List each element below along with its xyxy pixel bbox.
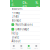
staticText: Storage xyxy=(12,19,22,22)
staticText: Calls xyxy=(20,47,23,49)
button[interactable]: Data Usage xyxy=(10,27,40,32)
button[interactable]: Calls xyxy=(17,44,25,50)
button[interactable]: More xyxy=(32,44,40,50)
button[interactable]: Help xyxy=(10,32,40,36)
button[interactable]: Storage xyxy=(10,19,40,22)
button[interactable]: Chats xyxy=(10,15,40,19)
staticText: Help xyxy=(12,32,19,35)
button[interactable]: Notifications xyxy=(10,22,40,27)
staticText: Invite xyxy=(12,36,20,39)
button[interactable]: Edit xyxy=(11,0,14,10)
staticText: About xyxy=(12,39,21,43)
button[interactable]: Privacy xyxy=(10,11,40,15)
button[interactable]: About xyxy=(10,39,40,43)
staticText: Chats xyxy=(12,15,19,18)
staticText: Notifications xyxy=(15,23,32,26)
button[interactable]: New xyxy=(36,1,39,8)
staticText: Chats xyxy=(22,1,27,8)
staticText: Status xyxy=(12,47,16,49)
staticText: Edit xyxy=(11,0,14,10)
staticText: Privacy xyxy=(12,11,20,14)
staticText: Account xyxy=(12,7,23,10)
button[interactable]: Account xyxy=(10,7,40,11)
staticText: Chats xyxy=(27,47,31,49)
button[interactable]: Chats xyxy=(25,44,32,50)
staticText: Data Usage xyxy=(15,27,29,31)
button[interactable]: Status xyxy=(10,44,17,50)
button[interactable]: Invite xyxy=(10,36,40,39)
staticText: New xyxy=(36,1,39,8)
staticText: More xyxy=(34,47,38,49)
